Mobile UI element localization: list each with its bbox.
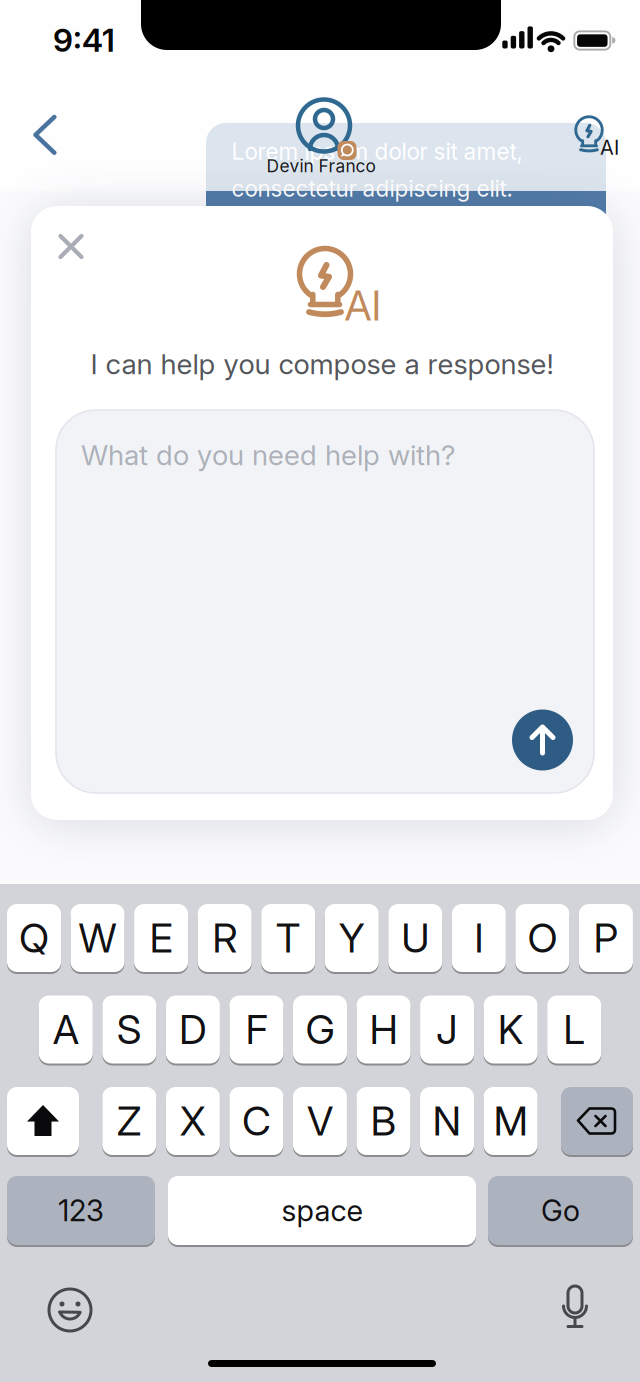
staticText: B [370,1097,396,1145]
button[interactable]: Back [28,108,62,162]
button[interactable]: S [102,994,156,1064]
button[interactable]: space [168,1175,476,1246]
staticText: K [498,1006,524,1053]
staticText: H [370,1006,398,1053]
staticText: V [307,1097,333,1145]
button[interactable]: M [484,1086,538,1156]
staticText: 9:41 [53,21,115,59]
button[interactable]: X [166,1086,220,1156]
button[interactable]: U [388,903,442,973]
staticText: W [78,914,116,962]
staticText: Z [117,1097,142,1145]
staticText: X [180,1097,206,1145]
button[interactable]: R [198,903,252,973]
staticText: I [474,914,483,962]
staticText: O [527,914,557,962]
button[interactable]: C [229,1086,283,1156]
staticText: Devin Franco [266,156,375,176]
staticText: 123 [58,1193,104,1228]
staticText: space [281,1193,362,1228]
button[interactable]: B [356,1086,410,1156]
button[interactable]: Delete [561,1086,633,1156]
staticText: J [436,1006,458,1053]
button[interactable]: E [134,903,188,973]
button[interactable]: W [70,903,124,973]
staticText: Y [339,914,365,962]
button[interactable]: P [579,903,633,973]
staticText: AI [344,281,381,330]
staticText: M [494,1097,528,1145]
button[interactable]: K [484,994,538,1064]
button[interactable]: G [293,994,347,1064]
staticText: Go [541,1193,580,1228]
button[interactable]: Close [58,234,83,259]
button[interactable]: Q [7,903,61,973]
button[interactable]: L [547,994,601,1064]
button[interactable]: Devin Franco [250,64,390,180]
button[interactable]: O [515,903,569,973]
button[interactable]: H [357,994,411,1064]
button[interactable]: AI assistant [568,101,632,165]
staticText: N [433,1097,462,1145]
button[interactable]: Dictation [560,1284,590,1332]
staticText: P [593,914,618,962]
button[interactable]: Y [325,903,379,973]
button[interactable]: N [420,1086,474,1156]
staticText: Lorem ipsum dolor sit amet, [231,138,522,165]
staticText: G [305,1006,334,1053]
staticText: AI [600,136,619,159]
staticText: R [212,914,237,962]
button[interactable]: F [229,994,283,1064]
staticText: consectetur adipiscing elit. [231,175,512,202]
button[interactable]: Z [102,1086,156,1156]
staticText: A [53,1006,79,1053]
staticText: What do you need help with? [81,438,455,471]
staticText: E [150,914,173,962]
button[interactable]: D [166,994,220,1064]
button[interactable]: Shift [7,1086,79,1156]
staticText: L [563,1006,585,1053]
staticText: F [245,1006,267,1053]
staticText: D [179,1006,207,1053]
button[interactable]: Emoji [47,1287,93,1333]
button[interactable]: V [293,1086,347,1156]
button[interactable]: Go [488,1175,633,1246]
button[interactable]: What do you need help with? [56,410,594,793]
staticText: C [242,1097,271,1145]
staticText: I can help you compose a response! [90,347,553,380]
staticText: T [276,914,301,962]
button[interactable]: I [452,903,506,973]
button[interactable]: 123 [7,1175,155,1246]
staticText: U [401,914,429,962]
button[interactable]: Send [512,709,573,770]
button[interactable]: T [261,903,315,973]
button[interactable]: J [420,994,474,1064]
staticText: Q [19,914,49,962]
staticText: S [117,1006,142,1053]
button[interactable]: A [39,994,93,1064]
